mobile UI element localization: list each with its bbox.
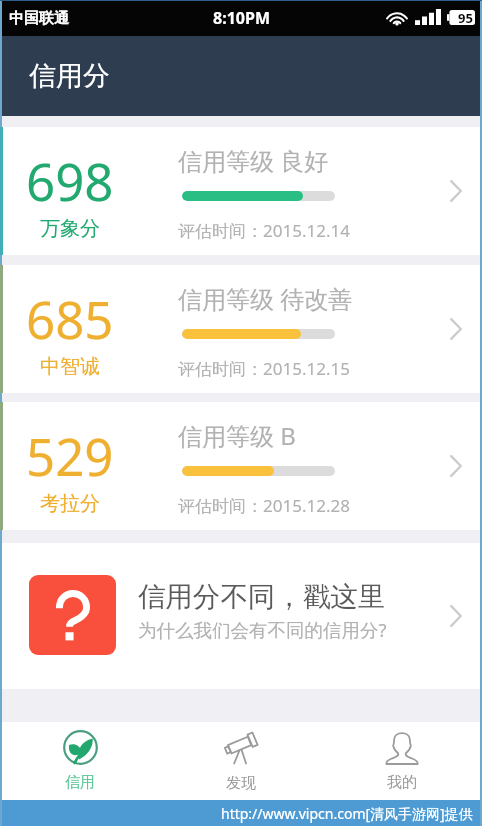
staticText: 中国联通 bbox=[9, 9, 69, 28]
button[interactable]: 698 bbox=[0, 127, 482, 255]
staticText: 评估时间：2015.12.28 bbox=[178, 494, 350, 517]
staticText: http://www.vipcn.com[清风手游网]提供 bbox=[221, 804, 473, 823]
staticText: 95 bbox=[458, 9, 473, 24]
button[interactable]: 685 bbox=[0, 265, 482, 393]
staticText: 信用等级 良好 bbox=[178, 144, 329, 177]
button[interactable]: Credit bbox=[0, 722, 160, 800]
button[interactable]: 529 bbox=[0, 402, 482, 530]
staticText: 我的 bbox=[387, 773, 417, 792]
staticText: 698 bbox=[26, 146, 114, 215]
staticText: 685 bbox=[26, 284, 114, 353]
staticText: 万象分 bbox=[40, 216, 100, 241]
staticText: 信用分 bbox=[29, 59, 110, 93]
staticText: 考拉分 bbox=[40, 491, 100, 516]
staticText: 信用等级 B bbox=[178, 419, 296, 452]
staticText: 评估时间：2015.12.15 bbox=[178, 357, 350, 380]
button[interactable]: Discover bbox=[160, 722, 321, 800]
staticText: 529 bbox=[26, 421, 114, 490]
staticText: 中智诚 bbox=[40, 354, 100, 379]
staticText: 信用 bbox=[65, 773, 95, 792]
button[interactable]: 信用分不同，戳这里 bbox=[0, 543, 482, 689]
staticText: 发现 bbox=[226, 774, 256, 793]
staticText: 评估时间：2015.12.14 bbox=[178, 219, 350, 242]
staticText: 为什么我们会有不同的信用分? bbox=[138, 617, 387, 642]
staticText: 信用等级 待改善 bbox=[178, 282, 353, 315]
button[interactable]: Profile bbox=[321, 722, 482, 800]
staticText: 8:10PM bbox=[213, 7, 270, 29]
staticText: 信用分不同，戳这里 bbox=[138, 580, 386, 615]
